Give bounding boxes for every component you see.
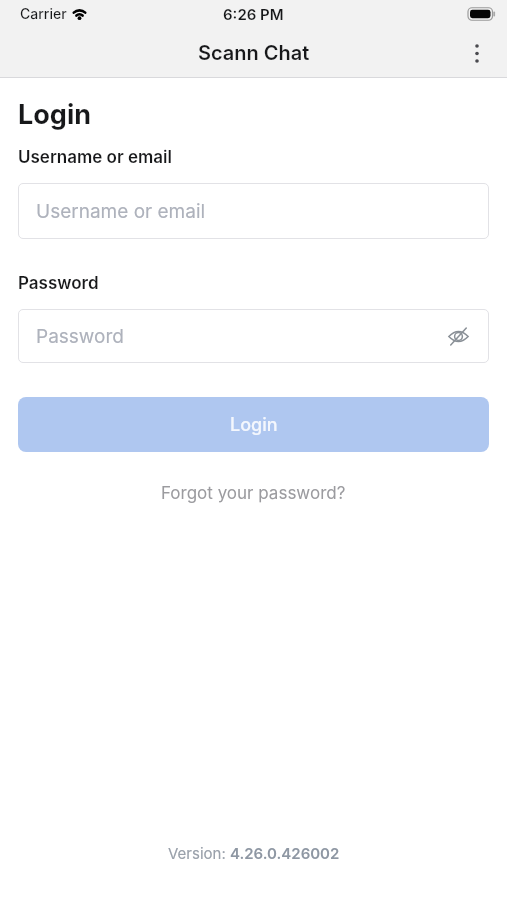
staticText: Version: 4.26.0.426002 (168, 844, 340, 862)
button[interactable] (463, 39, 491, 67)
staticText: Scann Chat (198, 41, 310, 65)
staticText: Username or email (18, 147, 173, 168)
staticText: Login (18, 98, 92, 131)
button[interactable]: Forgot your password? (161, 483, 346, 504)
button[interactable]: Login (18, 397, 489, 452)
staticText: Forgot your password? (161, 483, 346, 504)
button[interactable]: Username or email (18, 183, 489, 239)
button[interactable]: Password (18, 309, 489, 363)
staticText: 6:26 PM (223, 5, 284, 23)
staticText: Login (230, 414, 278, 436)
staticText: Password (18, 273, 99, 294)
staticText: Carrier (20, 5, 67, 22)
staticText: Username or email (36, 200, 206, 223)
staticText: Password (36, 325, 124, 348)
